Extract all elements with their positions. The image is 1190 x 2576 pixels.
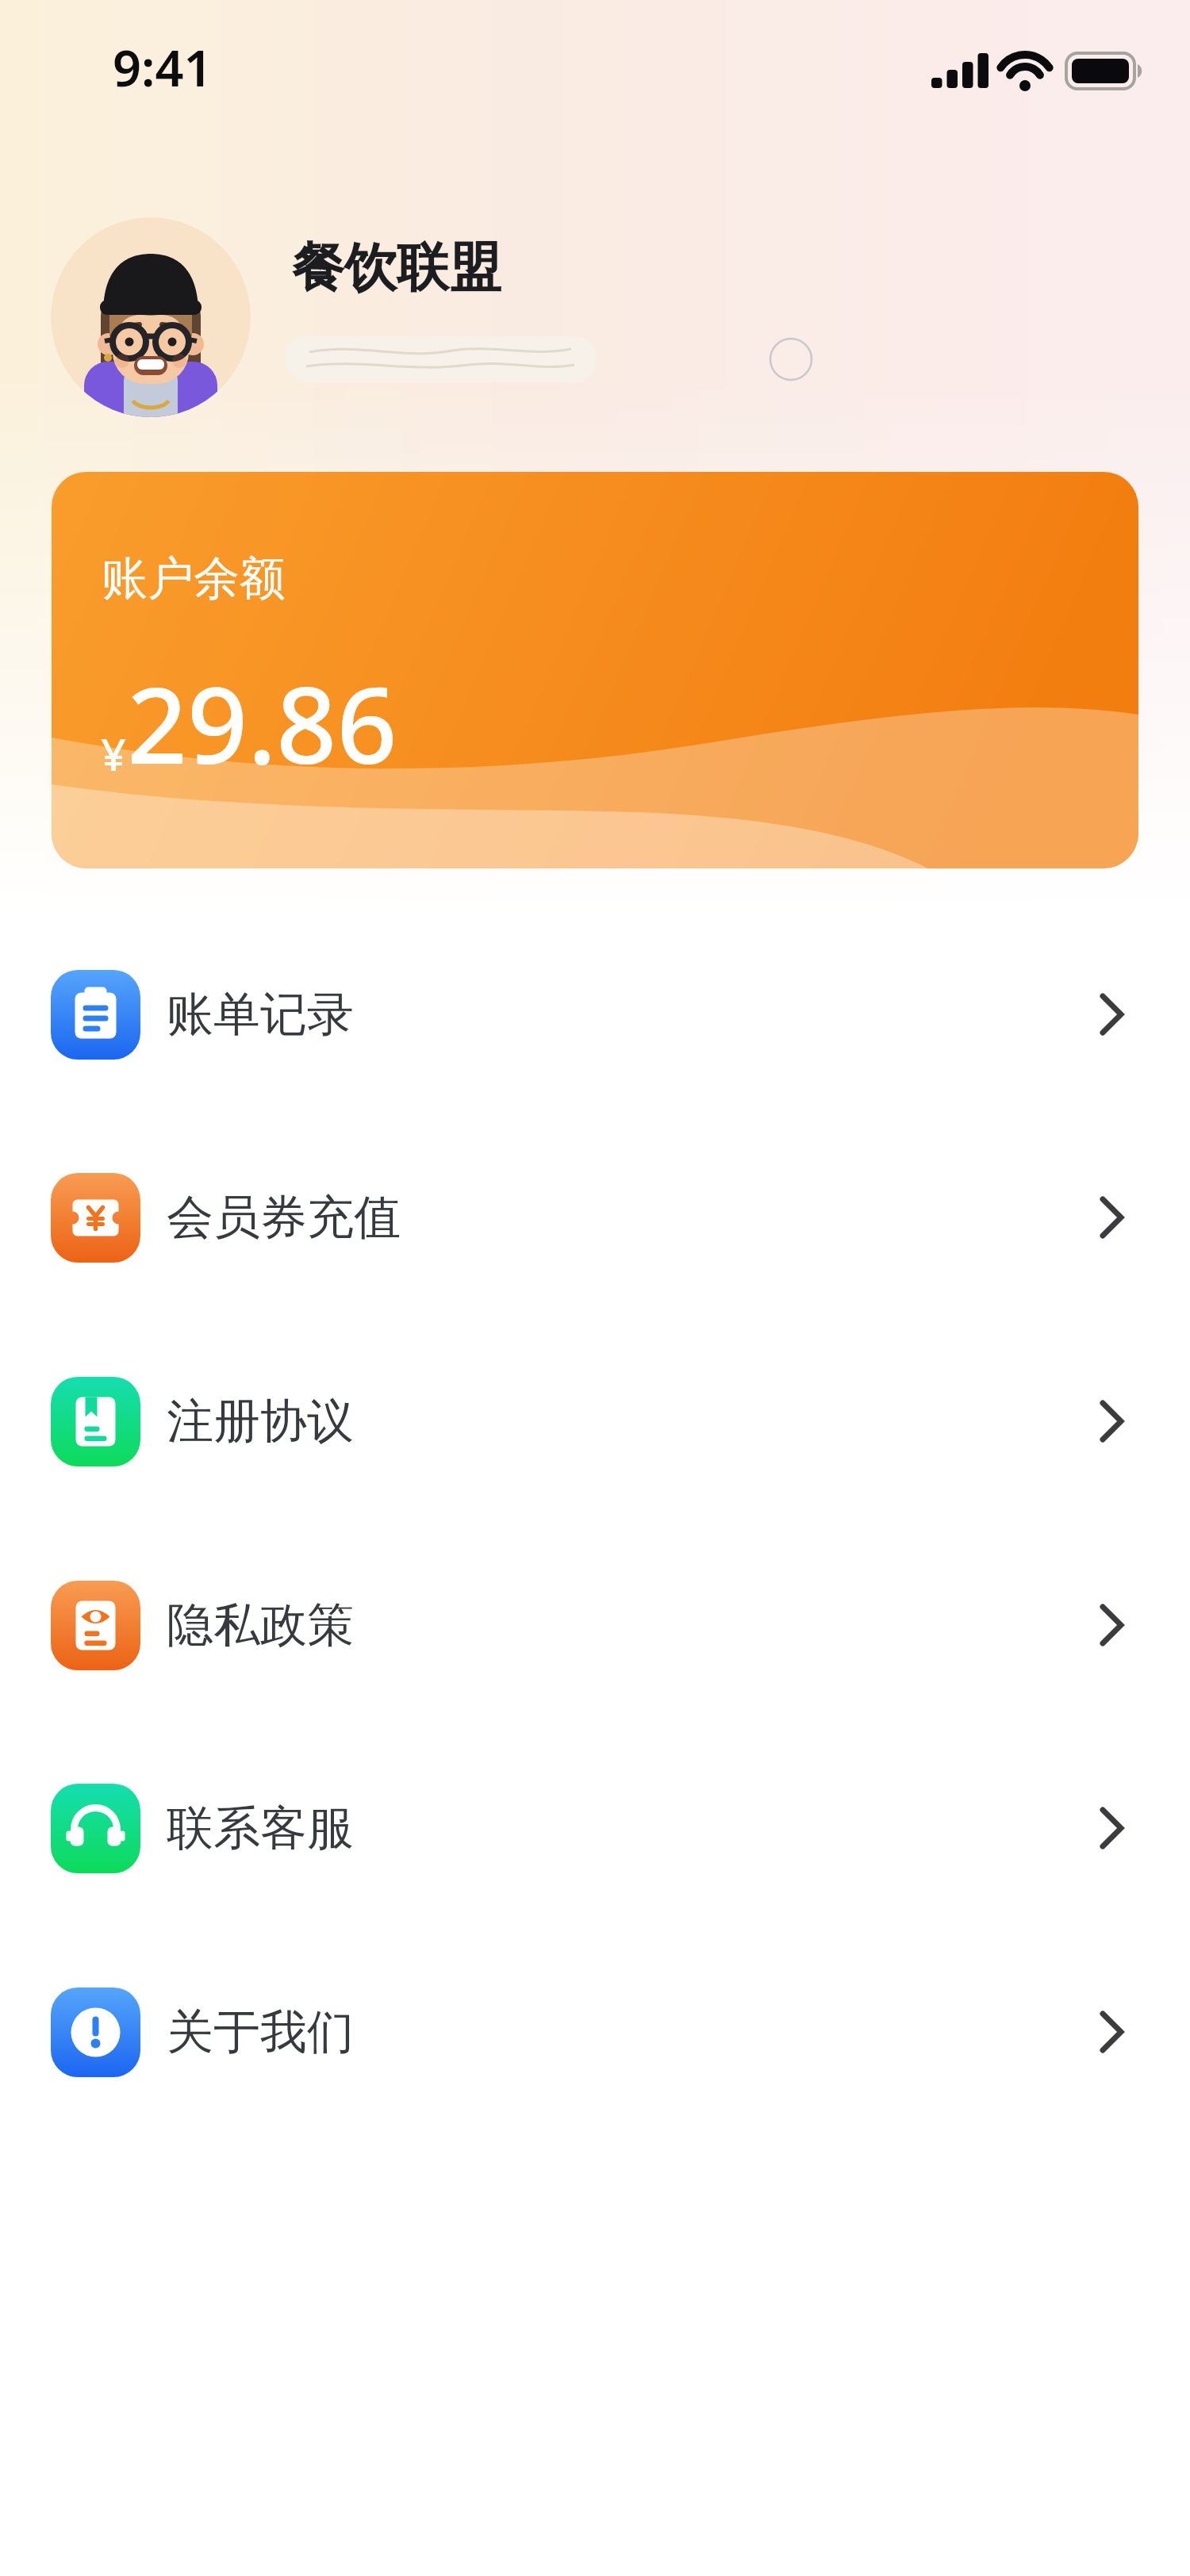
button[interactable] <box>770 338 812 381</box>
staticText: 9:41 <box>113 33 213 102</box>
staticText: 关于我们 <box>167 2003 354 2061</box>
staticText: 会员券充值 <box>167 1188 401 1247</box>
staticText: 隐私政策 <box>167 1596 354 1654</box>
staticText: 账单记录 <box>167 985 354 1044</box>
staticText: 联系客服 <box>167 1799 354 1857</box>
button[interactable]: 关于我们 <box>51 1987 1139 2077</box>
button[interactable]: 账户余额 <box>52 472 1138 868</box>
staticText: 注册协议 <box>167 1392 354 1451</box>
staticText: 餐饮联盟 <box>292 235 501 301</box>
staticText: ¥ <box>101 723 127 784</box>
button[interactable]: 会员券充值 <box>51 1172 1139 1263</box>
button[interactable] <box>51 217 251 417</box>
staticText: 29.86 <box>127 651 397 795</box>
button[interactable]: 注册协议 <box>51 1376 1139 1466</box>
button[interactable]: 隐私政策 <box>51 1580 1139 1670</box>
button[interactable]: 联系客服 <box>51 1783 1139 1873</box>
button[interactable]: 账单记录 <box>51 969 1139 1060</box>
staticText: 账户余额 <box>102 550 286 608</box>
